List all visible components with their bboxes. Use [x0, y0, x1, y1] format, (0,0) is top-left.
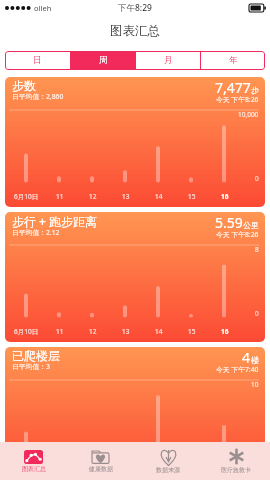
- button[interactable]: 日: [5, 51, 70, 70]
- staticText: 16: [221, 192, 229, 201]
- staticText: 日平均值：2,860: [12, 92, 64, 101]
- staticText: 日: [33, 55, 42, 66]
- staticText: 4: [242, 348, 251, 367]
- staticText: 步数: [12, 78, 36, 93]
- staticText: 图表汇总: [110, 23, 160, 39]
- staticText: 今天 下午7:40: [216, 365, 259, 374]
- staticText: olleh: [34, 3, 52, 13]
- staticText: 6月10日: [14, 192, 39, 201]
- staticText: 周: [99, 55, 108, 66]
- staticText: 数据来源: [156, 466, 180, 474]
- staticText: 图表汇总: [22, 465, 46, 473]
- button[interactable]: Sources: [134, 442, 202, 480]
- button[interactable]: 步行 + 跑步距离: [5, 212, 265, 342]
- button[interactable]: Health data: [67, 442, 134, 480]
- staticText: 12: [89, 462, 97, 471]
- staticText: 16: [221, 327, 229, 336]
- staticText: 楼: [251, 355, 259, 365]
- staticText: 15: [188, 192, 196, 201]
- staticText: 14: [155, 192, 163, 201]
- staticText: 10: [251, 380, 259, 389]
- button[interactable]: Medical ID: [202, 442, 270, 480]
- staticText: 13: [122, 192, 130, 201]
- staticText: 已爬楼层: [12, 348, 60, 363]
- staticText: 医疗急救卡: [221, 466, 251, 474]
- staticText: 12: [89, 192, 97, 201]
- staticText: 下午8:29: [118, 2, 152, 14]
- button[interactable]: 周: [71, 51, 135, 70]
- staticText: 步行 + 跑步距离: [12, 213, 98, 229]
- staticText: 13: [122, 327, 130, 336]
- staticText: 今天 下午8:26: [216, 95, 259, 104]
- staticText: 7,477: [215, 78, 251, 97]
- button[interactable]: 已爬楼层: [5, 347, 265, 477]
- staticText: 6月10日: [14, 327, 39, 336]
- button[interactable]: Chart summary: [0, 442, 67, 480]
- button[interactable]: 月: [136, 51, 200, 70]
- button[interactable]: 步数: [5, 77, 265, 207]
- staticText: 10,000: [238, 110, 259, 119]
- staticText: 0: [255, 174, 259, 183]
- staticText: 步: [251, 85, 259, 95]
- staticText: 16: [221, 462, 229, 471]
- button[interactable]: 年: [201, 51, 265, 70]
- staticText: 11: [56, 192, 64, 201]
- staticText: 年: [229, 55, 238, 66]
- staticText: 0: [255, 309, 259, 318]
- staticText: 日平均值：3: [12, 362, 50, 371]
- staticText: 5.59: [215, 213, 243, 232]
- staticText: 今天 下午8:26: [216, 230, 259, 239]
- staticText: 8: [255, 245, 259, 254]
- staticText: 6月10日: [14, 462, 39, 471]
- staticText: 11: [56, 327, 64, 336]
- staticText: 健康数据: [89, 465, 113, 473]
- staticText: 12: [89, 327, 97, 336]
- staticText: 14: [155, 462, 163, 471]
- staticText: 15: [188, 327, 196, 336]
- staticText: 日平均值：2.12: [12, 228, 60, 237]
- staticText: 公里: [243, 220, 259, 230]
- staticText: 月: [164, 55, 173, 66]
- staticText: 14: [155, 327, 163, 336]
